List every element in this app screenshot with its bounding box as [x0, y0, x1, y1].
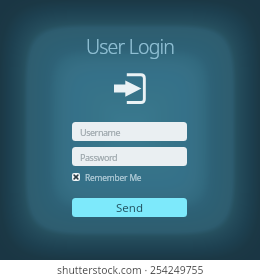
button[interactable]: Username [72, 122, 187, 141]
button[interactable]: Send [72, 198, 187, 217]
staticText: Remember Me [85, 172, 142, 183]
button[interactable]: Password [72, 147, 187, 166]
button[interactable]: Remember Me [72, 171, 187, 183]
staticText: User Login [86, 33, 175, 60]
staticText: Send [116, 200, 143, 216]
other: Login [113, 73, 146, 104]
staticText: shutterstock.com · 254249755 [57, 263, 204, 277]
staticText: Username [80, 126, 121, 138]
staticText: Password [80, 151, 118, 163]
